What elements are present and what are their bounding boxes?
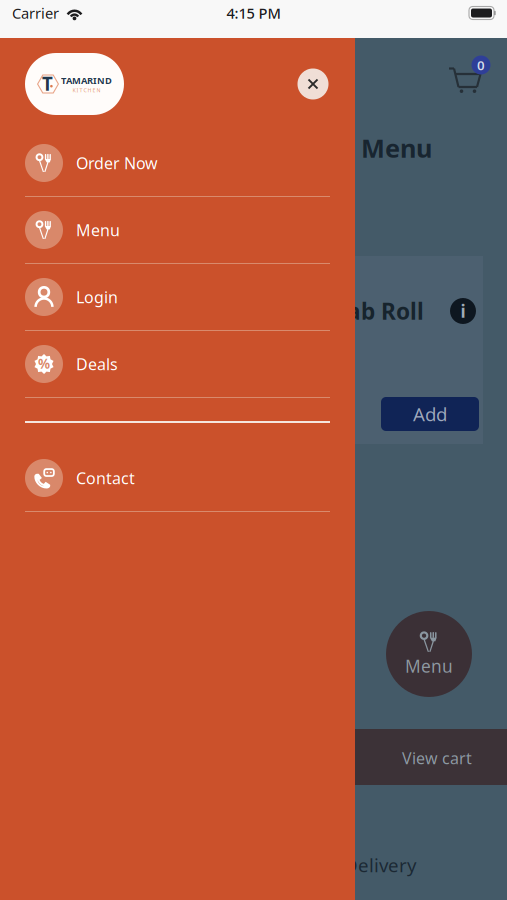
staticText: Deals xyxy=(76,353,118,375)
staticText: Order Now xyxy=(76,152,158,174)
staticText: K I T C H E N xyxy=(72,87,100,94)
staticText: T xyxy=(42,71,53,96)
button[interactable]: % xyxy=(0,331,355,398)
staticText: Login xyxy=(76,286,118,308)
staticText: Menu xyxy=(361,131,432,165)
staticText: Contact xyxy=(76,467,135,489)
staticText: 4:15 PM xyxy=(226,3,280,23)
staticText: Chicken Seekh Kabab Roll xyxy=(131,296,424,326)
button[interactable]: Login xyxy=(0,264,355,331)
staticText: Pickup or Delivery xyxy=(257,853,417,877)
button[interactable]: Order Now xyxy=(0,130,355,197)
staticText: i xyxy=(460,299,465,322)
staticText: 0 xyxy=(477,56,485,74)
button[interactable]: Close menu xyxy=(293,64,333,104)
staticText: % xyxy=(38,355,50,372)
staticText: View cart xyxy=(402,747,472,769)
staticText: TAMARIND xyxy=(61,74,112,87)
staticText: Menu xyxy=(405,654,453,677)
staticText: Menu xyxy=(76,219,120,241)
staticText: Carrier xyxy=(12,3,59,23)
button[interactable]: Contact xyxy=(0,445,355,512)
staticText: Add xyxy=(413,402,447,426)
button[interactable]: Menu xyxy=(0,197,355,264)
